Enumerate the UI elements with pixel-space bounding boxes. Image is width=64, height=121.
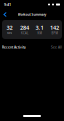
staticText: 3.1 [35,24,43,31]
staticText: BPM [51,31,57,35]
button[interactable]: Back [3,12,7,17]
staticText: Recent Activity [2,45,26,49]
staticText: KM [37,31,41,35]
staticText: See All [51,45,62,49]
staticText: KCAL [21,31,28,35]
staticText: 32 [6,24,12,31]
staticText: 142 [50,24,59,31]
staticText: 284 [20,24,29,31]
button[interactable]: See All [51,45,62,49]
staticText: Workout Summary [17,12,46,17]
staticText: MIN [7,31,12,35]
staticText: 9:41 [4,2,11,7]
